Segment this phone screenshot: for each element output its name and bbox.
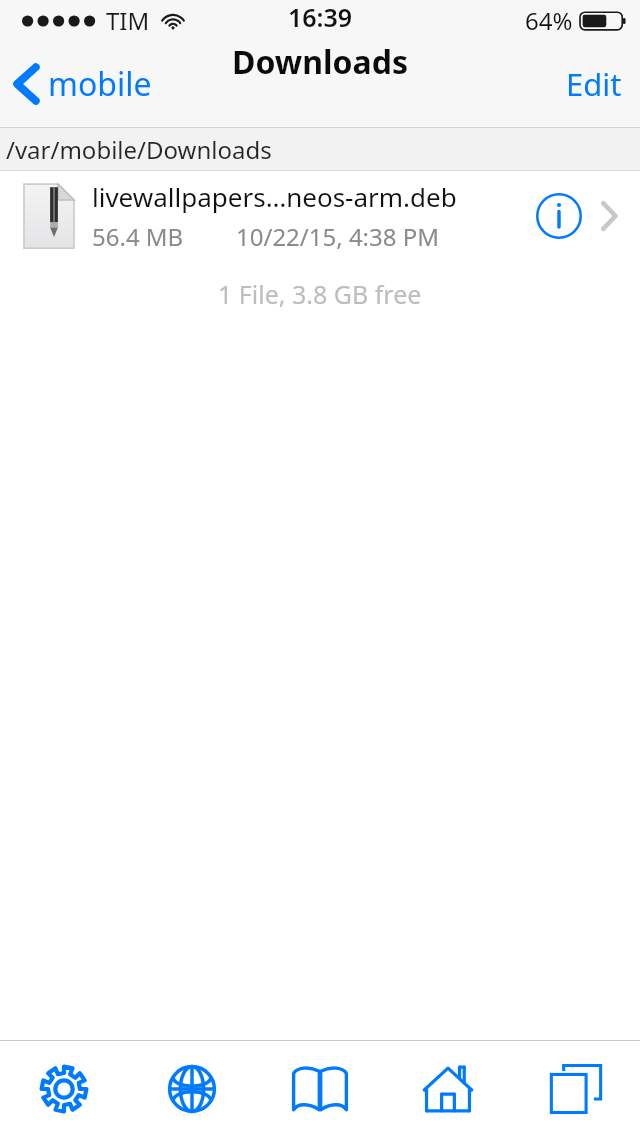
button[interactable]: Browser [128, 1041, 256, 1136]
staticText: 64% [525, 4, 573, 37]
button[interactable]: File info [530, 187, 588, 245]
button[interactable]: Bookmarks [256, 1041, 384, 1136]
other: Open [592, 187, 626, 245]
button[interactable]: Settings [0, 1041, 128, 1136]
button[interactable]: Edit [548, 53, 640, 115]
staticText: mobile [48, 62, 152, 106]
staticText: livewallpapers…neos-arm.deb [92, 179, 457, 214]
button[interactable]: mobile [0, 54, 166, 114]
staticText: /var/mobile/Downloads [6, 133, 272, 166]
staticText: 10/22/15, 4:38 PM [236, 220, 440, 253]
button[interactable]: livewallpapers…neos-arm.deb [0, 171, 640, 261]
button[interactable]: Home [384, 1041, 512, 1136]
staticText: Downloads [232, 40, 408, 84]
staticText: 1 File, 3.8 GB free [218, 277, 422, 311]
staticText: Edit [566, 63, 622, 105]
staticText: TIM [106, 4, 150, 37]
staticText: 16:39 [288, 0, 353, 34]
button[interactable]: Copy [512, 1041, 640, 1136]
staticText: 56.4 MB [92, 220, 184, 253]
